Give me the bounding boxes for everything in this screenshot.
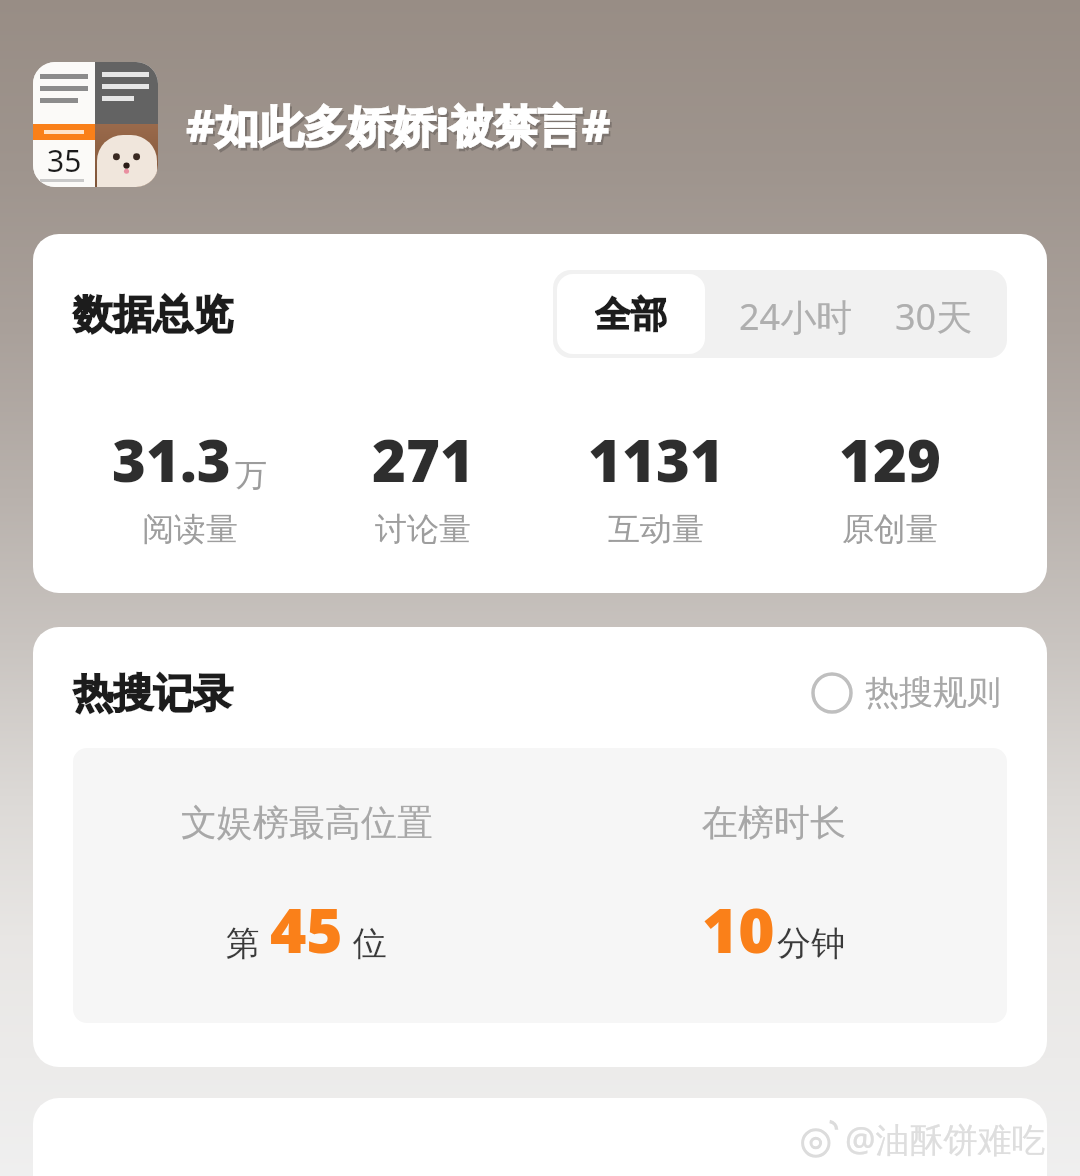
button[interactable]: 35 — [33, 62, 158, 187]
staticText: 45 — [270, 887, 343, 971]
staticText: 271 — [372, 420, 474, 499]
staticText: 129 — [839, 420, 941, 499]
staticText: @油酥饼难吃 — [845, 1116, 1046, 1162]
staticText: 全部 — [595, 292, 667, 336]
other: 热搜规则 — [811, 672, 853, 714]
staticText: 互动量 — [608, 509, 704, 549]
staticText: 在榜时长 — [702, 800, 846, 845]
staticText: 位 — [353, 922, 387, 965]
staticText: 数据总览 — [73, 289, 233, 339]
staticText: 原创量 — [842, 509, 938, 549]
staticText: 热搜记录 — [73, 668, 233, 718]
staticText: 30天 — [895, 292, 973, 336]
staticText: 分钟 — [777, 922, 845, 965]
staticText: 31.3 — [112, 420, 231, 499]
staticText: 文娱榜最高位置 — [181, 800, 433, 845]
staticText: #如此多娇娇i被禁言# — [186, 95, 611, 155]
staticText: 35 — [47, 140, 82, 179]
button[interactable]: 全部 — [557, 274, 705, 354]
button[interactable]: 24小时 — [709, 270, 883, 358]
button[interactable]: 热搜规则 — [805, 665, 1007, 720]
staticText: 第 — [226, 922, 260, 965]
staticText: 讨论量 — [375, 509, 471, 549]
staticText: 热搜规则 — [865, 671, 1001, 714]
button[interactable]: 30天 — [883, 270, 1007, 358]
staticText: #如此多娇娇i被禁言# — [188, 98, 613, 158]
staticText: 阅读量 — [142, 509, 238, 549]
staticText: 10 — [702, 887, 775, 971]
staticText: 24小时 — [739, 292, 853, 336]
staticText: 万 — [235, 455, 267, 495]
staticText: 1131 — [588, 420, 724, 499]
